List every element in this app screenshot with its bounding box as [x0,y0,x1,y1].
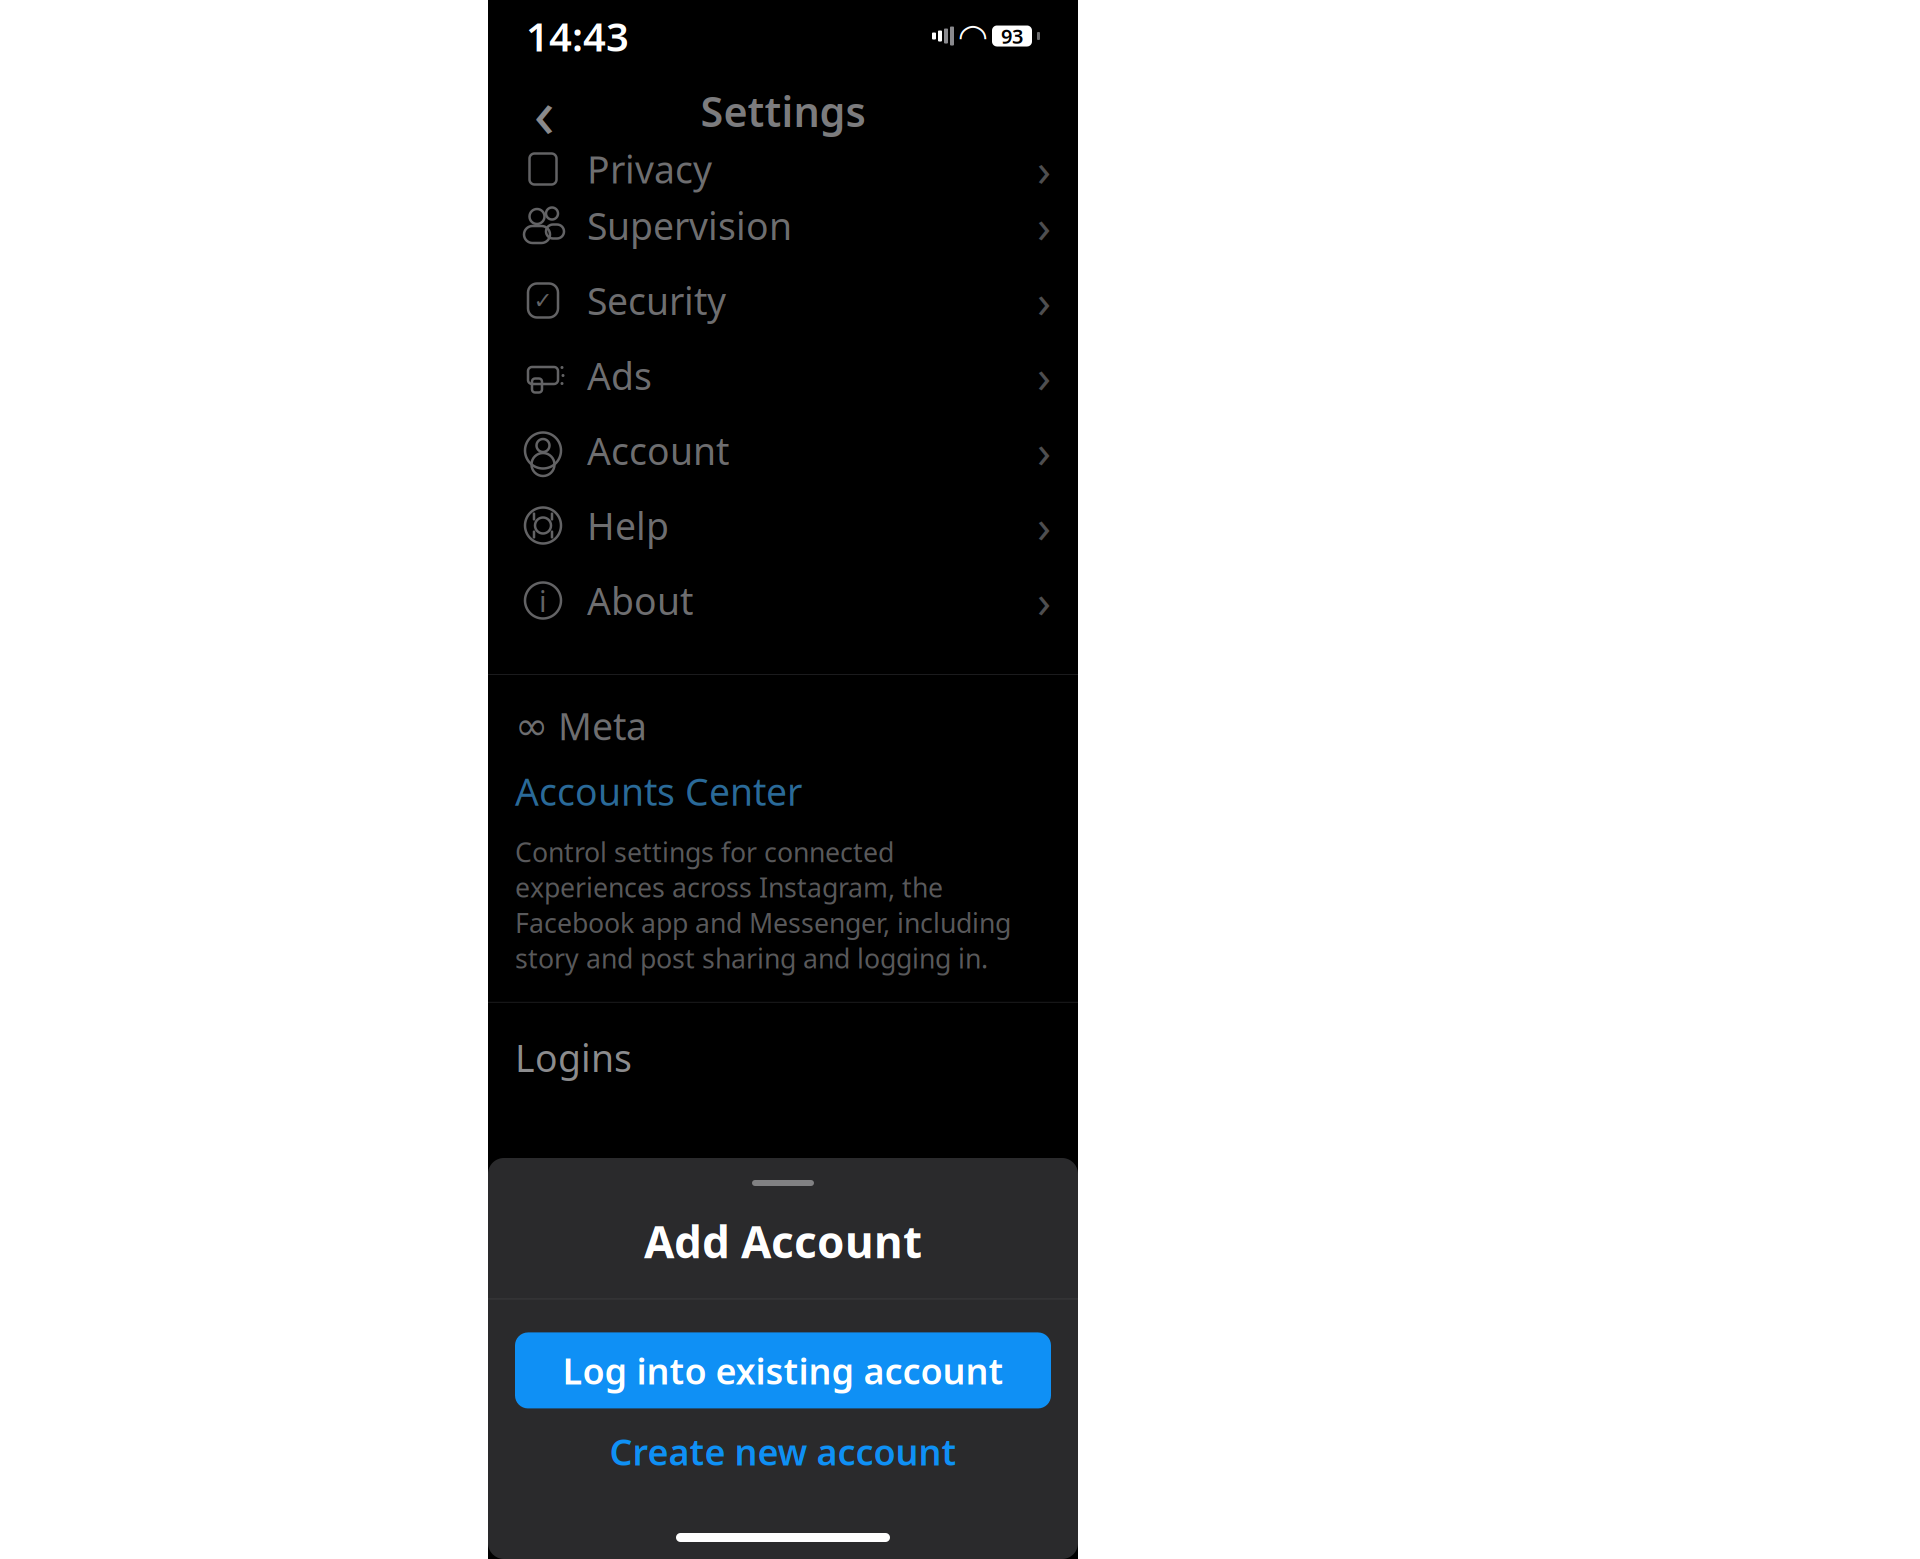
staticText: Logins [515,1033,632,1082]
button[interactable]: Help [488,488,1078,563]
staticText: › [1037,345,1051,406]
staticText: Ads [587,351,652,400]
staticText: Account [587,426,729,475]
button[interactable]: Back [516,83,572,139]
staticText: Add Account [644,1212,922,1270]
staticText: Help [587,501,669,550]
button[interactable]: Account [488,413,1078,488]
button[interactable]: Supervision [488,188,1078,263]
button[interactable]: Ads [488,338,1078,413]
button[interactable]: Create new account [515,1420,1051,1482]
staticText: Accounts Center [515,767,802,816]
staticText: › [1037,270,1051,331]
staticText: › [1037,570,1051,631]
staticText: › [1037,139,1051,199]
staticText: Control settings for connected experienc… [515,834,1011,976]
staticText: i [539,581,547,620]
staticText: › [1037,420,1051,481]
staticText: Security [587,276,726,325]
staticText: Settings [700,84,865,138]
staticText: About [587,576,693,625]
staticText: Supervision [587,201,792,250]
staticText: Meta [558,701,647,751]
staticText: Create new account [609,1427,956,1475]
staticText: Log into existing account [562,1346,1003,1394]
button[interactable]: i [488,563,1078,638]
staticText: ◠ [959,16,986,56]
button[interactable]: Privacy [488,150,1078,188]
staticText: 14:43 [526,9,629,62]
button[interactable]: Accounts Center [515,751,1051,816]
staticText: 93 [1001,23,1023,49]
staticText: ✓ [533,288,552,313]
staticText: Privacy [587,144,712,194]
button[interactable]: Log into existing account [515,1332,1051,1408]
staticText: ∞ [515,703,548,748]
staticText: › [1037,495,1051,556]
button[interactable]: ✓ [488,263,1078,338]
staticText: ‹ [533,65,554,157]
staticText: › [1037,195,1051,256]
